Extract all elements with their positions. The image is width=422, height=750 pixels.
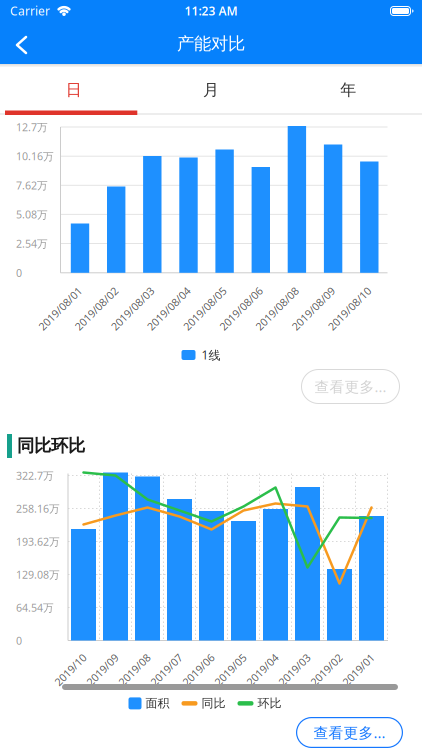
staticText: 1线: [201, 347, 220, 363]
staticText: 7.62万: [16, 178, 48, 192]
staticText: 11:23 AM: [184, 3, 237, 19]
staticText: 同比: [201, 696, 225, 711]
staticText: 129.08万: [16, 567, 60, 582]
staticText: 年: [340, 80, 356, 100]
staticText: 2019/08/06: [200, 284, 256, 298]
staticText: 5.08万: [16, 207, 48, 221]
staticText: 查看更多...: [313, 723, 385, 742]
staticText: 0: [16, 266, 22, 280]
staticText: 2019/08/09: [272, 284, 328, 298]
staticText: 64.54万: [16, 600, 54, 615]
staticText: 2019/08/04: [127, 284, 183, 298]
staticText: 2.54万: [16, 236, 48, 251]
button[interactable]: 查看更多...: [301, 369, 400, 404]
staticText: 2019/08/03: [91, 284, 147, 298]
staticText: 面积: [145, 696, 169, 711]
staticText: 0: [16, 633, 22, 648]
staticText: 查看更多...: [314, 377, 386, 396]
staticText: 2019/10: [39, 650, 79, 665]
staticText: Carrier: [10, 3, 50, 19]
staticText: 2019/04: [231, 650, 271, 665]
staticText: 2019/08/10: [308, 284, 364, 298]
staticText: 10.16万: [16, 149, 54, 163]
button[interactable]: 日: [5, 67, 142, 113]
staticText: 2019/08/01: [19, 284, 75, 298]
staticText: 日: [66, 80, 82, 100]
staticText: 2019/05: [199, 650, 239, 665]
button[interactable]: 查看更多...: [296, 717, 403, 748]
staticText: 2019/08/05: [164, 284, 220, 298]
button[interactable]: 年: [280, 67, 417, 113]
staticText: 环比: [257, 696, 281, 711]
staticText: 2019/06: [167, 650, 207, 665]
staticText: 2019/07: [135, 650, 175, 665]
staticText: 2019/03: [263, 650, 303, 665]
staticText: 同比环比: [17, 435, 85, 456]
staticText: 2019/08/08: [236, 284, 292, 298]
staticText: 2019/02: [295, 650, 335, 665]
staticText: 322.7万: [16, 468, 54, 483]
button[interactable]: Back: [0, 30, 44, 60]
staticText: 2019/01: [327, 650, 367, 665]
staticText: 12.7万: [16, 120, 48, 134]
staticText: 258.16万: [16, 501, 60, 516]
button[interactable]: 月: [142, 67, 280, 113]
staticText: 月: [203, 80, 219, 100]
staticText: 2019/09: [71, 650, 111, 665]
staticText: 产能对比: [177, 33, 245, 54]
staticText: 2019/08/02: [55, 284, 111, 298]
staticText: 193.62万: [16, 534, 60, 549]
staticText: 2019/08: [103, 650, 143, 665]
